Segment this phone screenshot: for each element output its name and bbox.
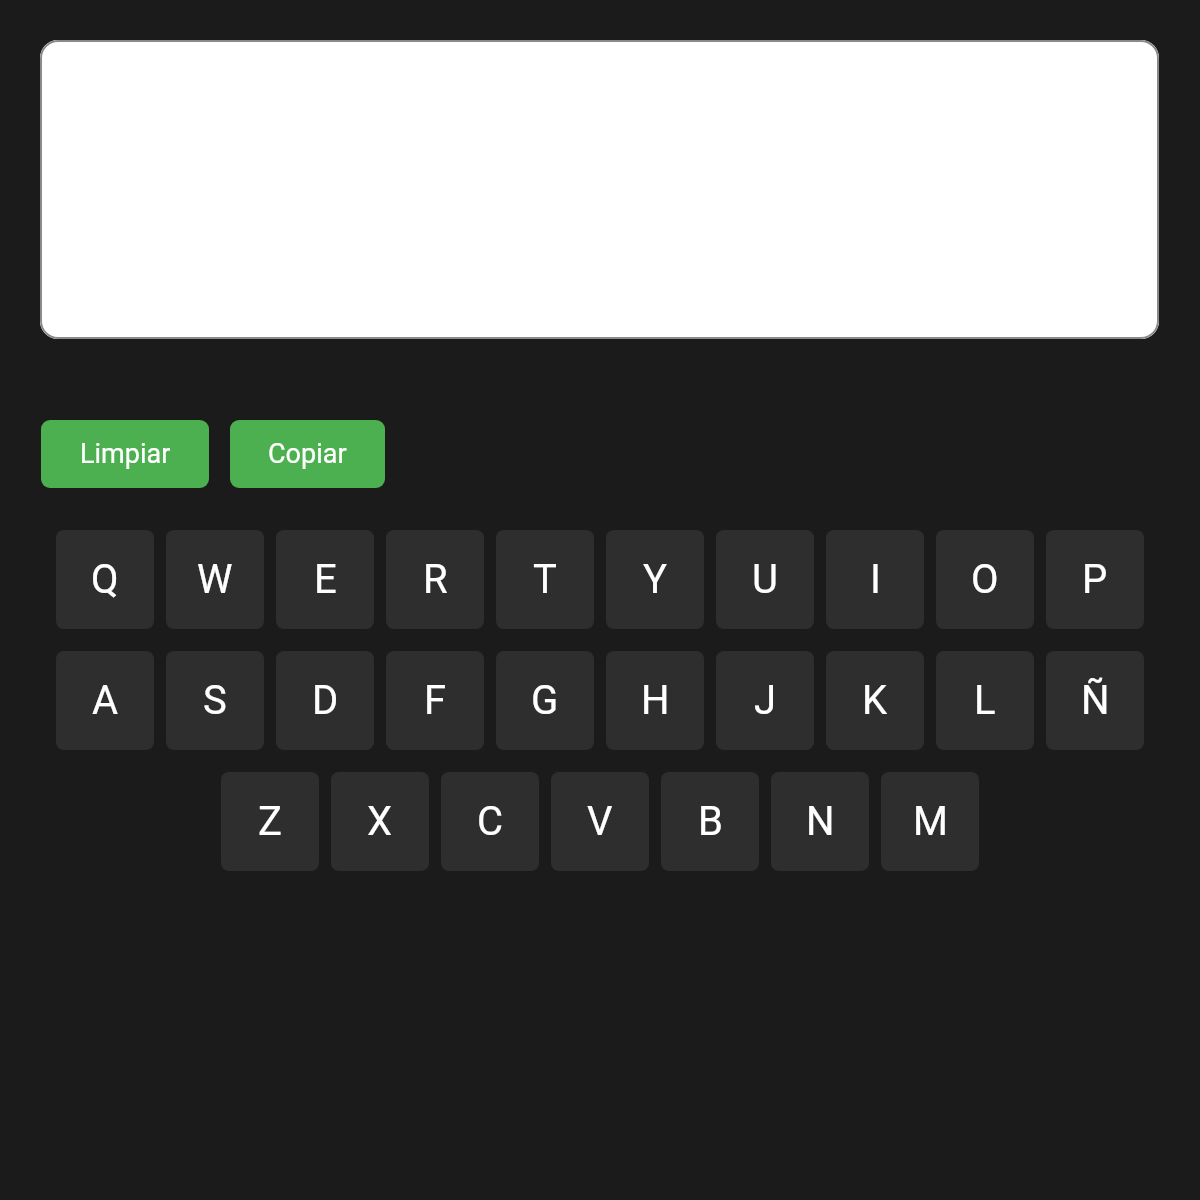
button[interactable]: A: [56, 651, 154, 750]
staticText: V: [587, 798, 613, 845]
staticText: U: [752, 556, 778, 603]
button[interactable]: L: [936, 651, 1034, 750]
staticText: B: [698, 798, 723, 845]
button[interactable]: U: [716, 530, 814, 629]
button[interactable]: I: [826, 530, 924, 629]
button[interactable]: C: [441, 772, 539, 871]
button[interactable]: Q: [56, 530, 154, 629]
button[interactable]: F: [386, 651, 484, 750]
button[interactable]: [40, 40, 1159, 339]
button[interactable]: H: [606, 651, 704, 750]
staticText: I: [870, 556, 881, 603]
button[interactable]: Copiar: [230, 420, 385, 488]
button[interactable]: S: [166, 651, 264, 750]
staticText: N: [806, 798, 835, 845]
staticText: T: [533, 556, 557, 603]
staticText: P: [1082, 556, 1108, 603]
staticText: F: [424, 677, 447, 724]
button[interactable]: N: [771, 772, 869, 871]
button[interactable]: J: [716, 651, 814, 750]
staticText: Copiar: [268, 438, 347, 470]
button[interactable]: V: [551, 772, 649, 871]
staticText: X: [367, 798, 393, 845]
staticText: Q: [91, 556, 119, 603]
staticText: D: [312, 677, 339, 724]
button[interactable]: Y: [606, 530, 704, 629]
staticText: E: [314, 556, 337, 603]
button[interactable]: Ñ: [1046, 651, 1144, 750]
button[interactable]: E: [276, 530, 374, 629]
button[interactable]: G: [496, 651, 594, 750]
staticText: G: [531, 677, 559, 724]
button[interactable]: X: [331, 772, 429, 871]
button[interactable]: B: [661, 772, 759, 871]
button[interactable]: Limpiar: [41, 420, 209, 488]
staticText: A: [92, 677, 119, 724]
staticText: M: [913, 798, 948, 845]
staticText: H: [641, 677, 670, 724]
staticText: W: [197, 556, 233, 603]
staticText: R: [423, 556, 448, 603]
staticText: O: [971, 556, 999, 603]
staticText: Limpiar: [80, 438, 171, 470]
button[interactable]: T: [496, 530, 594, 629]
staticText: L: [974, 677, 996, 724]
button[interactable]: D: [276, 651, 374, 750]
button[interactable]: M: [881, 772, 979, 871]
button[interactable]: O: [936, 530, 1034, 629]
button[interactable]: P: [1046, 530, 1144, 629]
staticText: C: [477, 798, 504, 845]
button[interactable]: Z: [221, 772, 319, 871]
staticText: Ñ: [1081, 677, 1110, 724]
staticText: Y: [643, 556, 668, 603]
button[interactable]: R: [386, 530, 484, 629]
staticText: K: [862, 677, 888, 724]
button[interactable]: W: [166, 530, 264, 629]
button[interactable]: K: [826, 651, 924, 750]
staticText: Z: [258, 798, 282, 845]
staticText: J: [754, 677, 777, 724]
staticText: S: [203, 677, 227, 724]
